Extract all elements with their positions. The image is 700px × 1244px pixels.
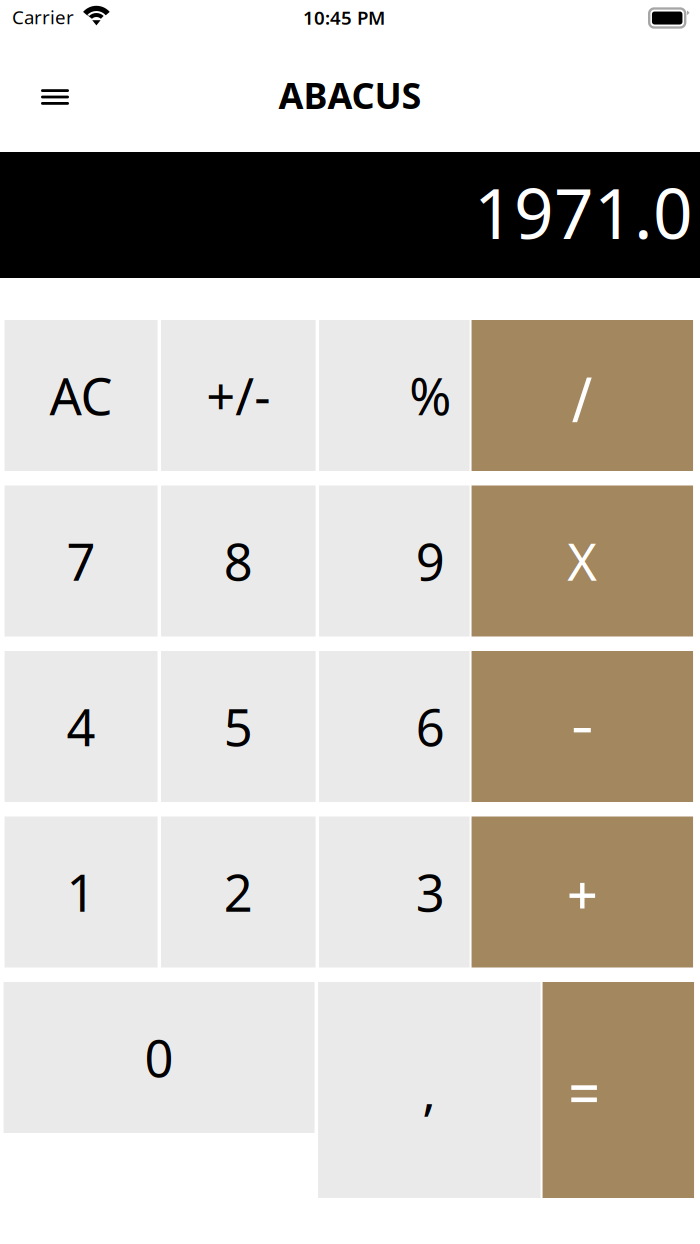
button[interactable]: 6 xyxy=(319,651,470,802)
button[interactable]: Divide xyxy=(472,320,693,471)
button[interactable]: AC xyxy=(4,320,157,471)
staticText: AC xyxy=(49,362,112,429)
button[interactable]: Equals xyxy=(542,982,694,1198)
button[interactable]: X xyxy=(472,485,693,636)
button[interactable]: % xyxy=(319,320,470,471)
staticText: 0 xyxy=(144,1024,173,1091)
staticText: 8 xyxy=(224,527,253,595)
staticText: 6 xyxy=(416,693,445,760)
button[interactable]: 7 xyxy=(4,485,157,636)
staticText: +/- xyxy=(206,362,270,429)
staticText: 1971.0 xyxy=(474,166,693,258)
button[interactable]: 3 xyxy=(319,816,470,967)
staticText: ABACUS xyxy=(278,71,421,119)
button[interactable]: 0 xyxy=(3,982,314,1133)
staticText: 4 xyxy=(66,693,95,760)
button[interactable]: Minus xyxy=(472,651,693,802)
button[interactable]: Menu xyxy=(13,57,97,133)
staticText: 5 xyxy=(224,693,253,760)
staticText: , xyxy=(422,1056,436,1124)
staticText: 2 xyxy=(224,858,253,926)
staticText: 10:45 PM xyxy=(303,5,385,30)
staticText: 1 xyxy=(66,858,95,926)
button[interactable]: Plus xyxy=(472,816,693,967)
staticText: 9 xyxy=(416,527,445,595)
button[interactable]: 2 xyxy=(161,816,315,967)
button[interactable]: 8 xyxy=(161,485,315,636)
staticText: 3 xyxy=(416,858,445,926)
button[interactable]: 1 xyxy=(4,816,157,967)
button[interactable]: , xyxy=(318,982,541,1198)
staticText: % xyxy=(409,362,451,429)
button[interactable]: 4 xyxy=(4,651,157,802)
staticText: X xyxy=(567,527,597,595)
staticText: Carrier xyxy=(12,5,74,29)
button[interactable]: 5 xyxy=(161,651,315,802)
button[interactable]: 9 xyxy=(319,485,470,636)
staticText: 7 xyxy=(66,527,95,595)
button[interactable]: +/- xyxy=(161,320,315,471)
